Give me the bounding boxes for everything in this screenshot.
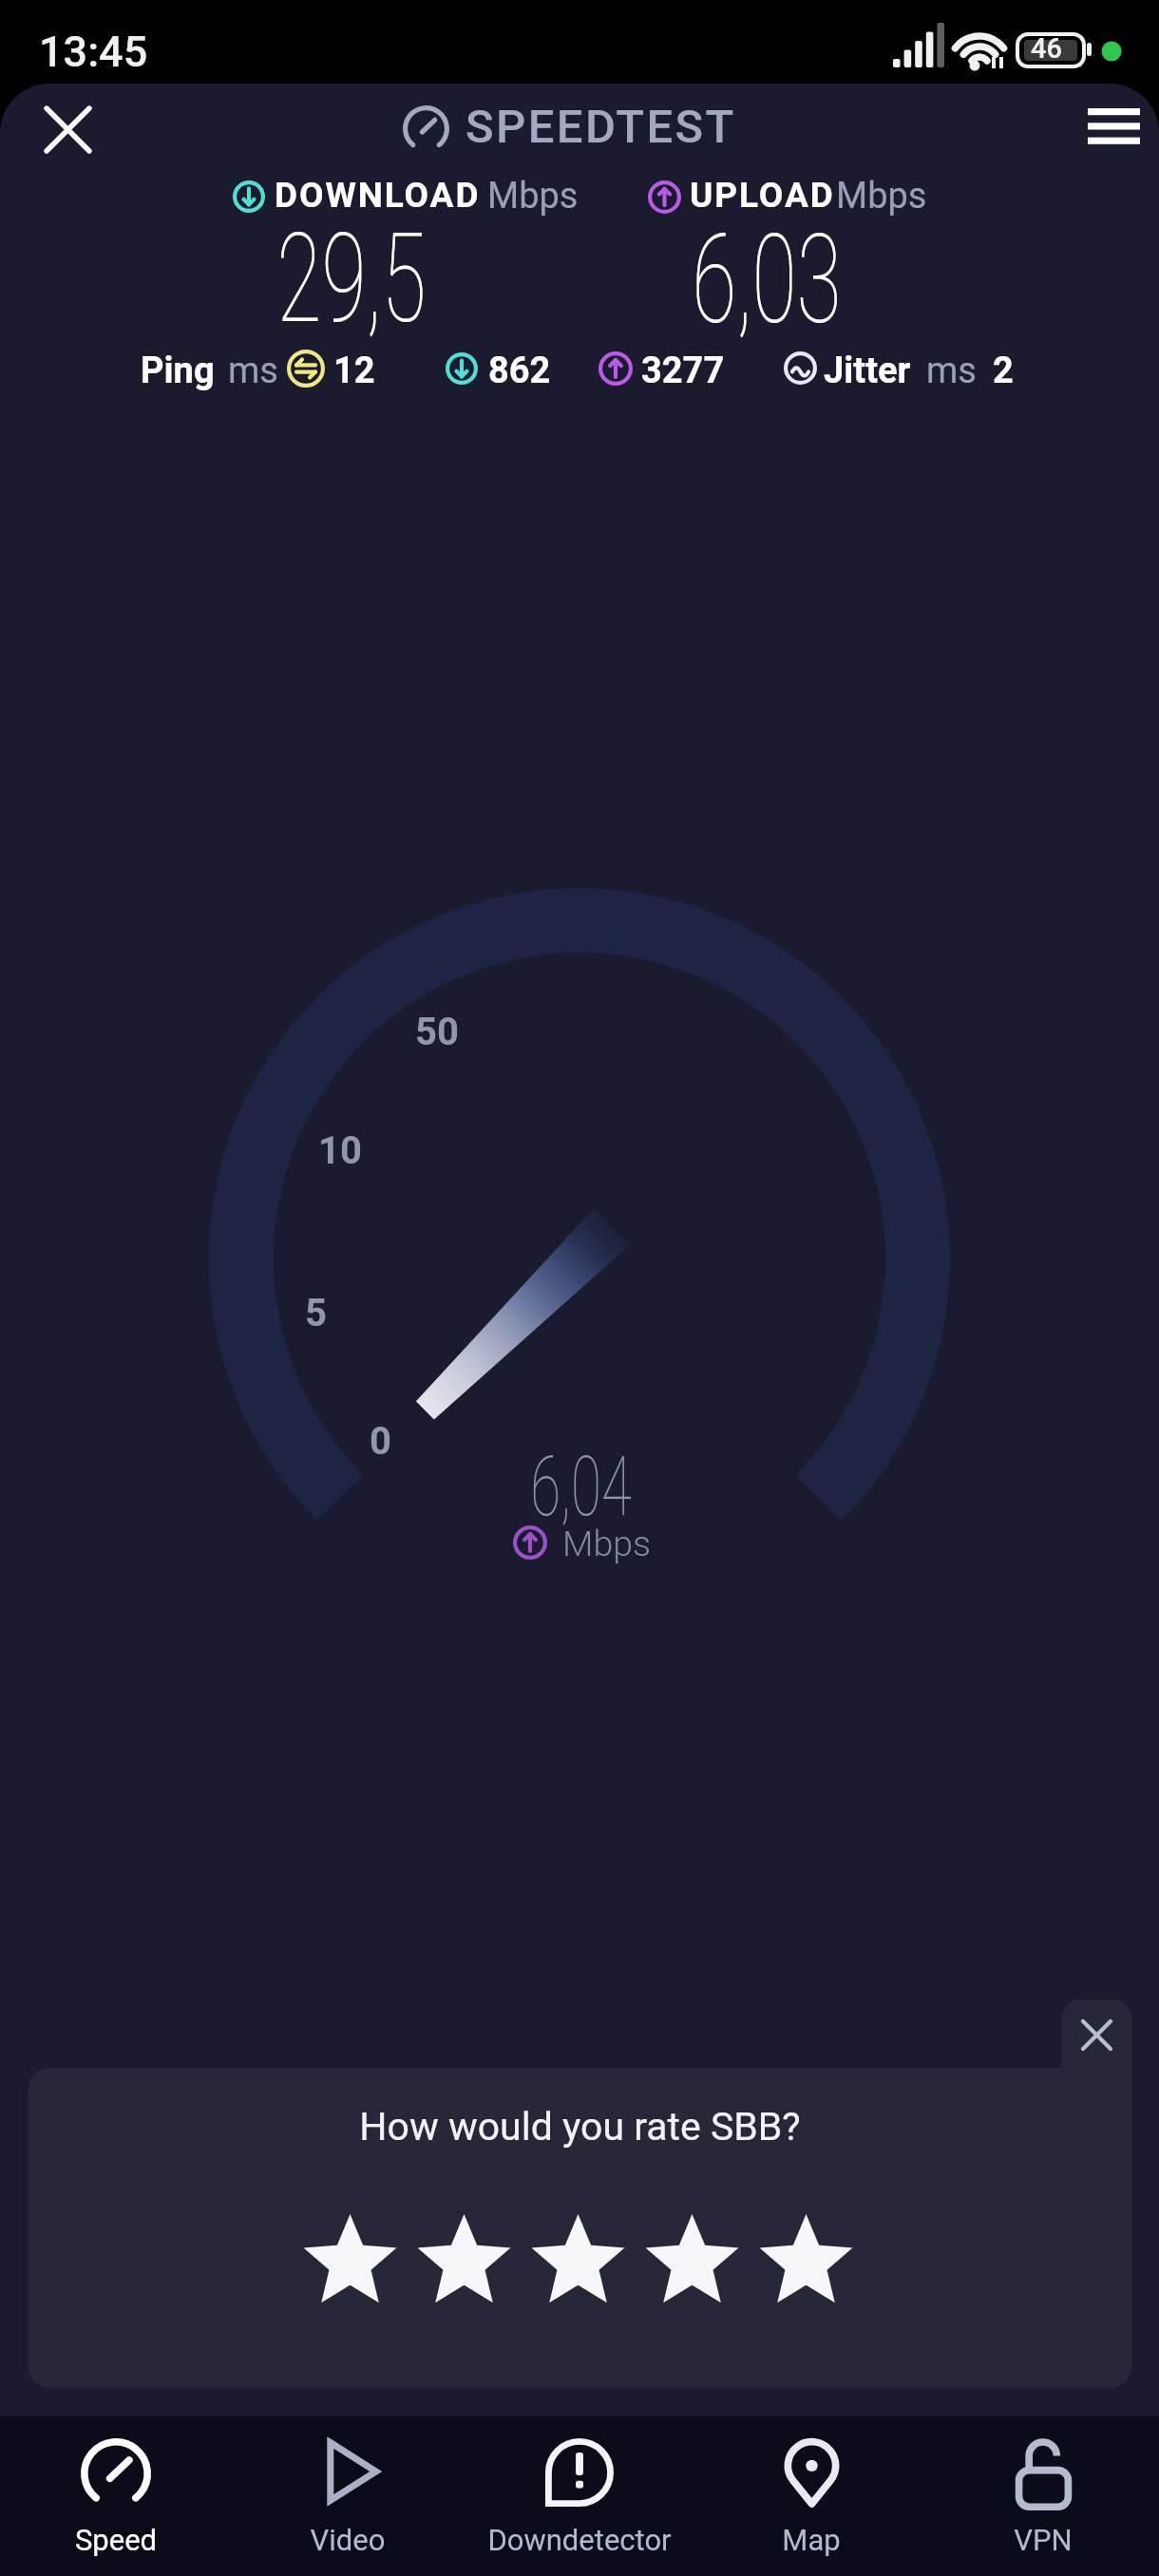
staticText: UPLOAD <box>690 175 835 216</box>
staticText: 46 <box>1031 32 1062 65</box>
staticText: 0 <box>370 1419 391 1464</box>
staticText: 2 <box>993 350 1014 392</box>
button[interactable]: Rate 1 star <box>293 2208 407 2318</box>
staticText: 5 <box>305 1291 327 1335</box>
button[interactable]: Map <box>695 2416 927 2576</box>
staticText: Ping <box>141 350 215 392</box>
staticText: Jitter <box>824 350 911 392</box>
button[interactable]: VPN <box>927 2416 1159 2576</box>
button[interactable]: Downdetector <box>464 2416 695 2576</box>
staticText: 6,03 <box>692 207 842 351</box>
staticText: Speed <box>0 2523 232 2557</box>
staticText: 29,5 <box>277 206 426 350</box>
staticText: 12 <box>333 350 375 392</box>
button[interactable]: Rate 5 star <box>749 2208 863 2318</box>
staticText: Mbps <box>836 175 927 218</box>
staticText: SPEEDTEST <box>465 100 736 154</box>
staticText: 13:45 <box>39 27 148 77</box>
button[interactable]: Video <box>232 2416 464 2576</box>
button[interactable]: Speed <box>0 2416 232 2576</box>
staticText: How would you rate SBB? <box>28 2104 1131 2150</box>
button[interactable]: Menu <box>1073 85 1154 166</box>
button[interactable]: Rate 3 star <box>521 2208 635 2318</box>
staticText: Mbps <box>562 1523 652 1564</box>
staticText: 10 <box>318 1128 362 1173</box>
button[interactable]: Close <box>28 89 108 170</box>
staticText: 862 <box>488 350 551 392</box>
button[interactable]: Dismiss rating card <box>1062 1999 1131 2094</box>
staticText: VPN <box>927 2523 1159 2557</box>
staticText: Video <box>232 2523 464 2557</box>
staticText: 50 <box>415 1010 459 1054</box>
staticText: Downdetector <box>464 2523 695 2557</box>
staticText: 3277 <box>641 350 725 392</box>
staticText: ms <box>926 350 977 392</box>
staticText: 6,04 <box>530 1437 632 1535</box>
staticText: Mbps <box>487 175 579 218</box>
button[interactable]: Rate 2 star <box>407 2208 521 2318</box>
button[interactable]: Rate 4 star <box>635 2208 749 2318</box>
staticText: DOWNLOAD <box>275 175 481 216</box>
staticText: Map <box>695 2523 927 2557</box>
staticText: ms <box>228 350 278 392</box>
